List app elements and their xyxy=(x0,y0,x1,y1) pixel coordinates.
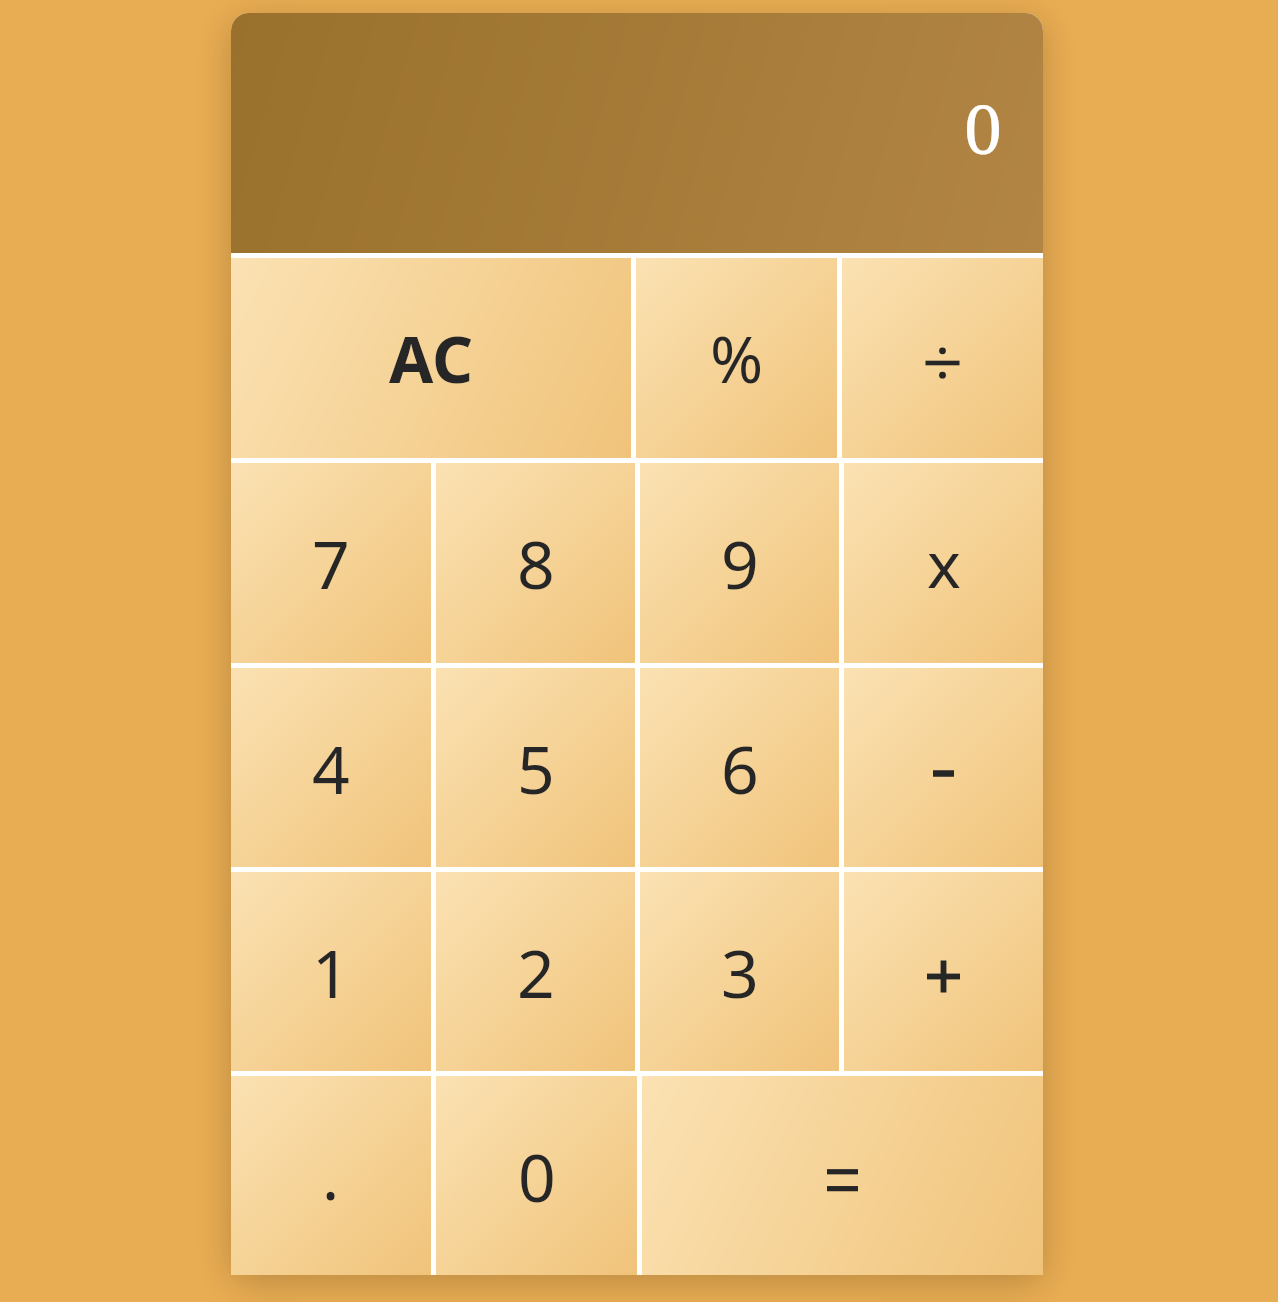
button[interactable] xyxy=(844,872,1043,1071)
staticText: x xyxy=(927,520,961,607)
button[interactable]: 7 xyxy=(231,463,431,663)
staticText: . xyxy=(322,1132,340,1219)
button[interactable]: 9 xyxy=(640,463,839,663)
button[interactable] xyxy=(844,668,1043,867)
button[interactable]: 2 xyxy=(436,872,635,1071)
staticText: 0 xyxy=(518,1131,556,1221)
button[interactable]: 4 xyxy=(231,668,431,867)
staticText: AC xyxy=(389,315,474,402)
button[interactable]: 6 xyxy=(640,668,839,867)
button[interactable] xyxy=(642,1076,1043,1275)
button[interactable]: . xyxy=(231,1076,431,1275)
button[interactable]: x xyxy=(844,463,1043,663)
button[interactable] xyxy=(842,258,1043,458)
staticText: 8 xyxy=(517,518,555,608)
staticText: 7 xyxy=(312,518,350,608)
staticText: 1 xyxy=(312,927,350,1017)
staticText: 6 xyxy=(721,723,759,813)
staticText: 2 xyxy=(517,927,555,1017)
staticText: 9 xyxy=(721,518,759,608)
button[interactable]: 8 xyxy=(436,463,635,663)
staticText: % xyxy=(710,315,764,402)
staticText: 5 xyxy=(517,723,555,813)
staticText: 0 xyxy=(964,81,1003,174)
staticText: 4 xyxy=(312,723,350,813)
button[interactable]: AC xyxy=(231,258,631,458)
button[interactable]: 5 xyxy=(436,668,635,867)
button[interactable]: % xyxy=(636,258,837,458)
button[interactable]: 3 xyxy=(640,872,839,1071)
button[interactable]: 0 xyxy=(436,1076,637,1275)
button[interactable]: 1 xyxy=(231,872,431,1071)
staticText: 3 xyxy=(721,927,759,1017)
